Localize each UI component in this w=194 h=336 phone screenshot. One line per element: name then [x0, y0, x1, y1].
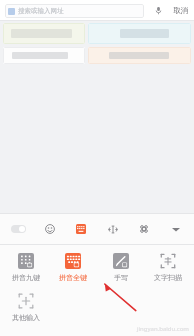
button[interactable]: Collapse keyboard [163, 216, 189, 242]
button[interactable]: Keyboard switch [5, 216, 31, 242]
staticText: jingyan.baidu.com [137, 325, 189, 333]
button[interactable]: 拼音全键 [51, 252, 95, 282]
staticText: 文字扫描 [154, 273, 182, 282]
button[interactable] [3, 23, 85, 44]
button[interactable]: 其他输入 [4, 292, 48, 322]
staticText: 其他输入 [12, 313, 40, 322]
staticText: 拼音全键 [59, 273, 87, 282]
button[interactable]: 搜索或输入网址 [5, 4, 144, 18]
button[interactable]: 文字扫描 [146, 252, 190, 282]
staticText: 拼音九键 [12, 273, 40, 282]
staticText: 手写 [114, 273, 128, 282]
button[interactable]: Emoji [37, 216, 63, 242]
button[interactable]: 取消 [171, 3, 190, 18]
button[interactable]: 手写 [99, 252, 143, 282]
button[interactable] [3, 47, 85, 64]
button[interactable]: 拼音九键 [4, 252, 48, 282]
staticText: 搜索或输入网址 [18, 7, 64, 15]
button[interactable]: Theme [68, 216, 94, 242]
button[interactable]: Shortcuts [131, 216, 157, 242]
staticText: 取消 [173, 6, 188, 15]
button[interactable]: Voice search [151, 3, 166, 18]
button[interactable]: Move cursor [100, 216, 126, 242]
button[interactable] [88, 47, 191, 64]
button[interactable] [88, 23, 191, 44]
